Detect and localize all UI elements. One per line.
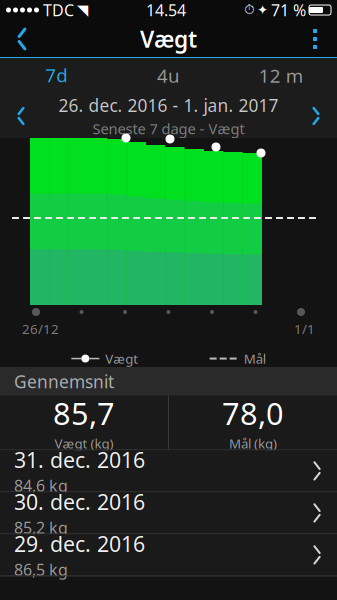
- staticText: TDC: [43, 0, 74, 21]
- button[interactable]: 31. dec. 2016: [0, 450, 337, 492]
- button[interactable]: 30. dec. 2016: [0, 492, 337, 534]
- staticText: 78,0: [222, 393, 284, 433]
- staticText: 12 m: [259, 63, 303, 88]
- staticText: 86,5 kg: [14, 559, 68, 580]
- staticText: 26/12: [22, 320, 59, 338]
- staticText: Seneste 7 dage - Vægt: [92, 119, 244, 138]
- button[interactable]: Next period: [295, 94, 337, 138]
- staticText: 30. dec. 2016: [14, 488, 145, 516]
- staticText: ✦: [257, 2, 268, 17]
- button[interactable]: 4u: [112, 58, 225, 94]
- staticText: 4u: [157, 63, 180, 88]
- button[interactable]: 7d: [0, 58, 112, 94]
- staticText: Gennemsnit: [14, 370, 114, 393]
- staticText: Mål (kg): [229, 434, 277, 452]
- button[interactable]: Back: [0, 20, 44, 58]
- staticText: 85,7: [53, 393, 115, 433]
- staticText: 14.54: [146, 0, 186, 21]
- staticText: ◥: [77, 2, 88, 18]
- button[interactable]: More options: [293, 20, 337, 58]
- staticText: 7d: [45, 63, 67, 87]
- staticText: ⏱: [244, 3, 254, 16]
- staticText: 31. dec. 2016: [14, 446, 145, 474]
- staticText: Vægt: [140, 24, 197, 54]
- staticText: Vægt (kg): [54, 434, 113, 452]
- button[interactable]: 29. dec. 2016: [0, 534, 337, 576]
- staticText: 26. dec. 2016 - 1. jan. 2017: [58, 94, 278, 117]
- staticText: 84,6 kg: [14, 475, 68, 496]
- staticText: Mål: [244, 350, 266, 367]
- staticText: 85,2 kg: [14, 517, 68, 538]
- button[interactable]: 12 m: [225, 58, 337, 94]
- staticText: 71 %: [271, 0, 306, 21]
- staticText: 1/1: [294, 320, 315, 338]
- staticText: 29. dec. 2016: [14, 530, 145, 558]
- staticText: Vægt: [105, 350, 138, 367]
- button[interactable]: Previous period: [0, 94, 42, 138]
